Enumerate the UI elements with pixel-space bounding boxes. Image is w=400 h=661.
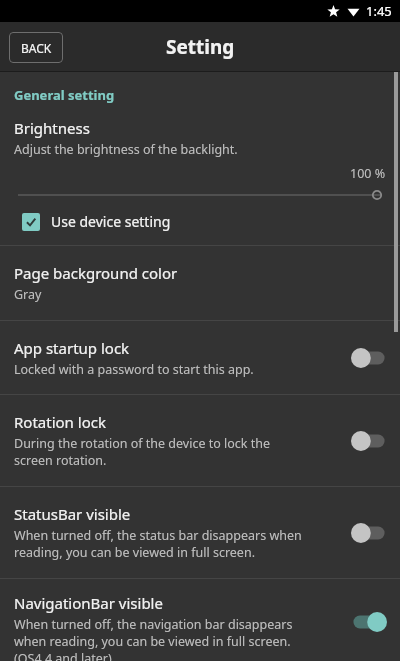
button[interactable]: Use device setting xyxy=(14,210,177,233)
button[interactable]: StatusBar visible xyxy=(0,487,400,578)
staticText: When turned off, the status bar disappea… xyxy=(14,527,302,561)
button[interactable]: Toggle off xyxy=(350,347,388,369)
staticText: 1:45 xyxy=(366,2,392,20)
staticText: 100 % xyxy=(350,165,386,182)
button[interactable]: Brightness xyxy=(0,118,400,245)
button[interactable]: BACK xyxy=(9,32,63,63)
staticText: Adjust the brightness of the backlight. xyxy=(14,141,238,158)
staticText: StatusBar visible xyxy=(14,504,131,524)
staticText: Locked with a password to start this app… xyxy=(14,361,254,378)
button[interactable]: App startup lock xyxy=(0,321,400,394)
staticText: During the rotation of the device to loc… xyxy=(14,435,271,469)
button[interactable]: Toggle off xyxy=(350,430,388,452)
button[interactable]: Page background color xyxy=(0,246,400,320)
staticText: BACK xyxy=(21,40,52,56)
staticText: Use device setting xyxy=(51,212,171,231)
button[interactable]: Toggle on xyxy=(350,611,388,633)
staticText: App startup lock xyxy=(14,338,130,358)
staticText: When turned off, the navigation bar disa… xyxy=(14,616,293,661)
button[interactable]: Rotation lock xyxy=(0,395,400,486)
button[interactable]: Brightness slider xyxy=(14,188,386,202)
button[interactable]: NavigationBar visible xyxy=(0,579,400,661)
staticText: Rotation lock xyxy=(14,412,106,432)
staticText: Setting xyxy=(166,34,235,60)
staticText: Brightness xyxy=(14,118,90,138)
staticText: NavigationBar visible xyxy=(14,593,163,613)
button[interactable]: Toggle off xyxy=(350,522,388,544)
staticText: Page background color xyxy=(14,263,178,283)
staticText: General setting xyxy=(14,86,115,104)
staticText: Gray xyxy=(14,286,42,303)
